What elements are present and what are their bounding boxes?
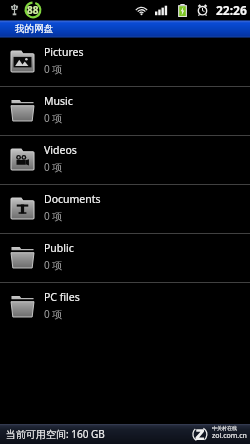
- staticText: Pictures: [44, 45, 84, 59]
- staticText: PC files: [44, 290, 80, 304]
- staticText: Public: [44, 241, 74, 255]
- button[interactable]: Music: [0, 87, 250, 136]
- button[interactable]: Public: [0, 234, 250, 283]
- button[interactable]: Documents: [0, 185, 250, 234]
- staticText: 0 项: [44, 111, 63, 125]
- staticText: 中关村在线: [212, 425, 237, 431]
- staticText: 88: [27, 3, 39, 17]
- staticText: 0 项: [44, 209, 63, 223]
- staticText: zol.com.cn: [212, 431, 247, 441]
- staticText: Videos: [44, 143, 77, 157]
- staticText: 0 项: [44, 258, 63, 272]
- button[interactable]: PC files: [0, 283, 250, 332]
- staticText: 0 项: [44, 160, 63, 174]
- button[interactable]: Pictures: [0, 38, 250, 87]
- staticText: Music: [44, 94, 73, 108]
- staticText: 0 项: [44, 307, 63, 321]
- button[interactable]: Videos: [0, 136, 250, 185]
- staticText: 当前可用空间: 160 GB: [6, 427, 105, 441]
- staticText: 22:26: [216, 2, 247, 18]
- staticText: 我的网盘: [15, 23, 54, 35]
- staticText: Documents: [44, 192, 101, 206]
- staticText: 0 项: [44, 62, 63, 76]
